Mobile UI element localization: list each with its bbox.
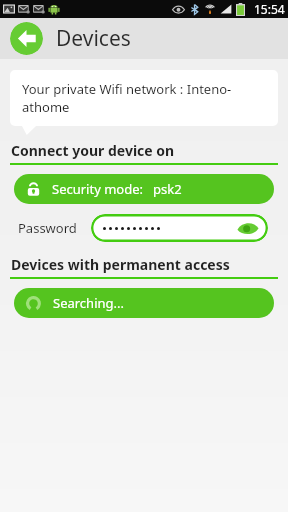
staticText: psk2 xyxy=(153,180,182,198)
staticText: Security mode: xyxy=(52,180,144,198)
staticText: 15:54 xyxy=(254,1,285,17)
button[interactable]: Searching... xyxy=(14,288,274,318)
button[interactable]: Show password xyxy=(237,221,259,235)
staticText: Connect your device on xyxy=(11,141,175,160)
button[interactable]: Security mode: xyxy=(14,174,274,204)
staticText: Searching... xyxy=(53,294,124,312)
staticText: Password xyxy=(18,219,77,237)
button[interactable]: Back xyxy=(10,22,43,55)
staticText: Your private Wifi network : Inteno-athom… xyxy=(22,80,266,116)
staticText: Devices xyxy=(56,24,131,53)
staticText: Devices with permanent access xyxy=(11,255,230,274)
button[interactable]: Show password xyxy=(91,214,268,242)
button[interactable]: Your private Wifi network : Inteno-athom… xyxy=(10,70,278,126)
